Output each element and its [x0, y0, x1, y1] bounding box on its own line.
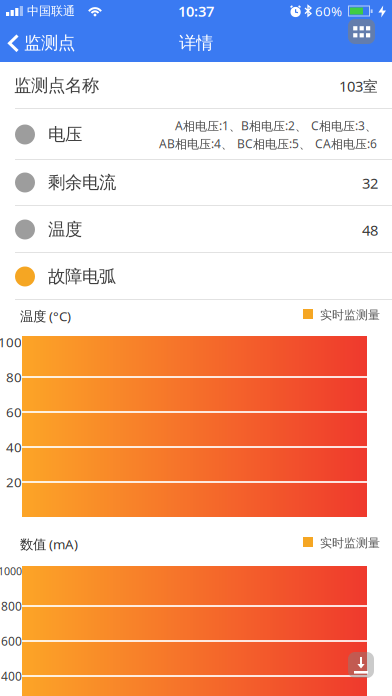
staticText: 32 — [362, 173, 378, 193]
staticText: 剩余电流 — [48, 172, 116, 193]
staticText: 温度 (°C) — [20, 307, 71, 325]
staticText: 详情 — [179, 32, 213, 54]
staticText: 中国联通 — [27, 4, 75, 18]
staticText: AB相电压:4、 BC相电压:5、 CA相电压:6 — [159, 135, 377, 151]
staticText: 60% — [315, 2, 342, 20]
staticText: 48 — [362, 220, 378, 240]
staticText: 实时监测量 — [320, 308, 380, 322]
button[interactable]: 监测点 — [8, 31, 75, 55]
staticText: 监测点 — [24, 32, 75, 54]
staticText: 温度 — [48, 219, 82, 240]
staticText: A相电压:1、B相电压:2、 C相电压:3、 — [175, 117, 377, 133]
staticText: 600 — [1, 633, 22, 649]
staticText: 20 — [6, 473, 22, 491]
button[interactable]: 下载 — [348, 652, 374, 678]
staticText: 1000 — [0, 564, 22, 578]
staticText: 实时监测量 — [320, 536, 380, 550]
staticText: 40 — [6, 438, 22, 456]
staticText: 80 — [6, 368, 22, 386]
staticText: 60 — [6, 403, 22, 421]
button[interactable]: 更多功能 — [348, 19, 375, 44]
staticText: 数值 (mA) — [20, 535, 78, 553]
staticText: 故障电弧 — [48, 266, 116, 287]
staticText: 400 — [1, 668, 22, 684]
staticText: 800 — [1, 598, 22, 614]
staticText: 10:37 — [178, 1, 214, 21]
staticText: 监测点名称 — [14, 75, 99, 96]
staticText: 电压 — [48, 124, 82, 145]
staticText: 100 — [0, 333, 22, 351]
staticText: 103室 — [339, 76, 378, 96]
